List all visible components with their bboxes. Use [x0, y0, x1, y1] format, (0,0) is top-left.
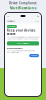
- button[interactable]: Check compliance: [7, 41, 39, 45]
- staticText: Compliance: [7, 20, 15, 22]
- staticText: Passcode enabled, OS up to date and disk…: [7, 50, 35, 53]
- staticText: Check compliance: [16, 42, 29, 44]
- staticText: Your device must meet the security polic…: [7, 36, 39, 40]
- staticText: Keep your devices secure: [7, 29, 35, 36]
- staticText: Device Compliance: [9, 1, 37, 5]
- staticText: Device Requirements: [7, 47, 23, 49]
- staticText: 9:41: [7, 15, 10, 17]
- staticText: Continue: [31, 55, 38, 56]
- staticText: Notifications: [9, 5, 36, 10]
- staticText: Done: [35, 20, 39, 22]
- staticText: Enroll now: [8, 26, 15, 27]
- staticText: ıl ▾ ▮: [37, 15, 39, 17]
- button[interactable]: Continue: [29, 54, 39, 57]
- button[interactable]: Enroll now: [7, 25, 17, 28]
